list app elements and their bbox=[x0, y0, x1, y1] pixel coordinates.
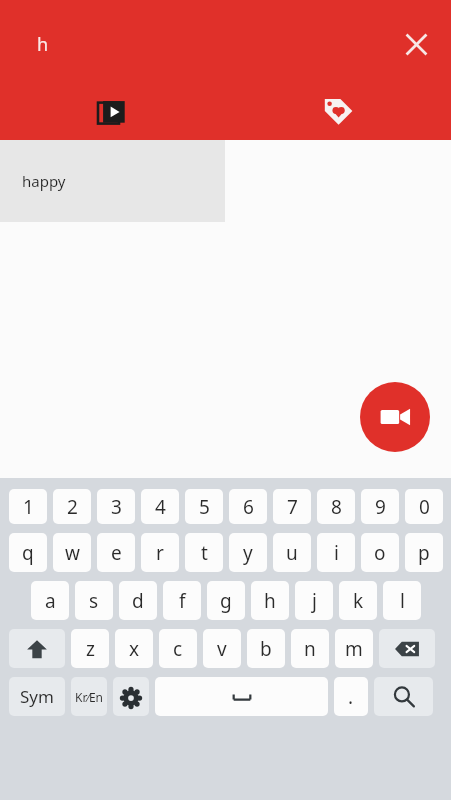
button[interactable]: Shift bbox=[9, 629, 65, 668]
button[interactable]: g bbox=[207, 581, 245, 620]
button[interactable]: 8 bbox=[317, 489, 355, 524]
staticText: p bbox=[418, 540, 430, 566]
button[interactable]: Settings bbox=[113, 677, 149, 716]
button[interactable]: . bbox=[334, 677, 368, 716]
button[interactable]: e bbox=[97, 533, 135, 572]
staticText: z bbox=[86, 636, 95, 662]
staticText: l bbox=[400, 588, 405, 614]
button[interactable]: Sym bbox=[9, 677, 65, 716]
staticText: t bbox=[201, 540, 208, 566]
button[interactable]: d bbox=[119, 581, 157, 620]
staticText: 3 bbox=[111, 494, 122, 520]
button[interactable]: Kr⁄En bbox=[71, 677, 107, 716]
staticText: 2 bbox=[67, 494, 78, 520]
button[interactable]: h bbox=[251, 581, 289, 620]
button[interactable]: Close bbox=[393, 21, 439, 67]
staticText: 0 bbox=[419, 494, 430, 520]
button[interactable]: l bbox=[383, 581, 421, 620]
staticText: 7 bbox=[287, 494, 298, 520]
staticText: 9 bbox=[375, 494, 386, 520]
button[interactable]: s bbox=[75, 581, 113, 620]
staticText: s bbox=[89, 588, 99, 614]
staticText: w bbox=[65, 540, 80, 566]
button[interactable]: 9 bbox=[361, 489, 399, 524]
staticText: j bbox=[312, 588, 317, 614]
staticText: 5 bbox=[199, 494, 210, 520]
button[interactable]: Space bbox=[155, 677, 328, 716]
staticText: y bbox=[243, 540, 253, 566]
staticText: n bbox=[304, 636, 316, 662]
button[interactable]: 7 bbox=[273, 489, 311, 524]
button[interactable]: m bbox=[335, 629, 373, 668]
button[interactable]: u bbox=[273, 533, 311, 572]
staticText: 6 bbox=[243, 494, 254, 520]
staticText: Sym bbox=[20, 685, 54, 708]
staticText: e bbox=[111, 540, 122, 566]
staticText: h bbox=[37, 32, 49, 57]
button[interactable]: 4 bbox=[141, 489, 179, 524]
button[interactable]: 3 bbox=[97, 489, 135, 524]
staticText: m bbox=[345, 636, 363, 662]
staticText: o bbox=[374, 540, 386, 566]
staticText: k bbox=[353, 588, 364, 614]
button[interactable]: Backspace bbox=[379, 629, 435, 668]
button[interactable]: Videos tab bbox=[0, 88, 225, 140]
button[interactable]: n bbox=[291, 629, 329, 668]
button[interactable]: Record video bbox=[360, 382, 430, 452]
staticText: x bbox=[129, 636, 140, 662]
staticText: u bbox=[286, 540, 298, 566]
staticText: d bbox=[132, 588, 144, 614]
staticText: b bbox=[260, 636, 272, 662]
button[interactable]: q bbox=[9, 533, 47, 572]
button[interactable]: 6 bbox=[229, 489, 267, 524]
staticText: f bbox=[179, 588, 186, 614]
staticText: q bbox=[22, 540, 34, 566]
staticText: 8 bbox=[331, 494, 342, 520]
button[interactable]: r bbox=[141, 533, 179, 572]
button[interactable]: happy bbox=[0, 140, 225, 222]
staticText: 1 bbox=[23, 494, 34, 520]
button[interactable]: x bbox=[115, 629, 153, 668]
button[interactable]: a bbox=[31, 581, 69, 620]
button[interactable]: c bbox=[159, 629, 197, 668]
staticText: r bbox=[156, 540, 164, 566]
staticText: h bbox=[264, 588, 276, 614]
staticText: v bbox=[217, 636, 227, 662]
staticText: happy bbox=[22, 171, 66, 191]
button[interactable]: Search bbox=[374, 677, 433, 716]
button[interactable]: 5 bbox=[185, 489, 223, 524]
button[interactable]: p bbox=[405, 533, 443, 572]
button[interactable]: k bbox=[339, 581, 377, 620]
button[interactable]: o bbox=[361, 533, 399, 572]
button[interactable]: w bbox=[53, 533, 91, 572]
button[interactable]: 0 bbox=[405, 489, 443, 524]
button[interactable]: i bbox=[317, 533, 355, 572]
staticText: Kr⁄En bbox=[75, 689, 104, 705]
staticText: g bbox=[220, 588, 232, 614]
button[interactable]: t bbox=[185, 533, 223, 572]
staticText: 4 bbox=[155, 494, 166, 520]
staticText: . bbox=[348, 684, 354, 710]
staticText: i bbox=[334, 540, 339, 566]
button[interactable]: Stickers tab bbox=[225, 88, 451, 140]
button[interactable]: 1 bbox=[9, 489, 47, 524]
button[interactable]: z bbox=[71, 629, 109, 668]
button[interactable]: j bbox=[295, 581, 333, 620]
button[interactable]: y bbox=[229, 533, 267, 572]
button[interactable]: v bbox=[203, 629, 241, 668]
button[interactable]: f bbox=[163, 581, 201, 620]
staticText: c bbox=[173, 636, 183, 662]
button[interactable]: 2 bbox=[53, 489, 91, 524]
button[interactable]: b bbox=[247, 629, 285, 668]
staticText: a bbox=[45, 588, 56, 614]
